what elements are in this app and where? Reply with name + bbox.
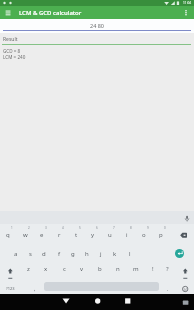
button[interactable] — [180, 265, 191, 275]
staticText: 5 — [79, 226, 81, 230]
button[interactable]: m — [126, 263, 146, 275]
button[interactable]: k — [105, 248, 125, 260]
button[interactable]: q — [0, 229, 18, 241]
button[interactable]: , — [25, 282, 45, 294]
staticText: q — [6, 231, 10, 239]
button[interactable]: b — [90, 263, 110, 275]
button[interactable] — [58, 296, 74, 308]
button[interactable]: ?123 — [0, 282, 20, 294]
button[interactable]: a — [6, 248, 26, 260]
button[interactable]: y — [83, 229, 103, 241]
staticText: 2 — [28, 226, 30, 230]
button[interactable]: n — [108, 263, 128, 275]
staticText: LCM & GCD calculator — [19, 9, 82, 17]
staticText: m — [133, 265, 139, 273]
staticText: 9 — [147, 226, 149, 230]
staticText: ?123 — [6, 286, 15, 291]
staticText: a — [14, 250, 18, 258]
button[interactable]: z — [18, 263, 38, 275]
button[interactable]: f — [49, 248, 69, 260]
staticText: j — [100, 250, 102, 258]
button[interactable]: ? — [157, 263, 177, 275]
staticText: , — [34, 285, 36, 292]
staticText: x — [44, 265, 48, 273]
staticText: h — [85, 250, 89, 258]
button[interactable]: g — [63, 248, 83, 260]
button[interactable]: w — [15, 229, 35, 241]
staticText: z — [27, 265, 30, 273]
staticText: 24 80 — [90, 22, 105, 29]
staticText: n — [116, 265, 120, 273]
button[interactable] — [175, 249, 184, 258]
staticText: t — [75, 231, 78, 239]
button[interactable]: c — [54, 263, 74, 275]
button[interactable] — [181, 284, 190, 293]
staticText: Result — [3, 36, 18, 43]
button[interactable]: j — [91, 248, 111, 260]
staticText: k — [113, 250, 117, 258]
button[interactable]: . — [158, 282, 178, 294]
button[interactable] — [178, 230, 190, 240]
staticText: g — [71, 250, 75, 258]
button[interactable] — [120, 296, 136, 308]
staticText: d — [42, 250, 46, 258]
staticText: . — [167, 285, 169, 292]
button[interactable] — [0, 19, 194, 33]
button[interactable] — [3, 8, 13, 17]
button[interactable] — [5, 265, 16, 275]
staticText: e — [40, 231, 44, 239]
button[interactable]: u — [100, 229, 120, 241]
staticText: o — [142, 231, 146, 239]
button[interactable]: p — [151, 229, 171, 241]
button[interactable]: ! — [143, 263, 163, 275]
staticText: 11:04 — [183, 1, 192, 5]
staticText: 3 — [45, 226, 47, 230]
button[interactable]: t — [66, 229, 86, 241]
staticText: 0 — [164, 226, 166, 230]
staticText: b — [98, 265, 102, 273]
staticText: v — [80, 265, 84, 273]
button[interactable]: h — [77, 248, 97, 260]
staticText: 4 — [62, 226, 64, 230]
button[interactable]: v — [72, 263, 92, 275]
button[interactable]: x — [36, 263, 56, 275]
staticText: 8 — [130, 226, 132, 230]
staticText: 6 — [96, 226, 98, 230]
staticText: w — [23, 231, 28, 239]
button[interactable]: r — [49, 229, 69, 241]
staticText: p — [159, 231, 163, 239]
staticText: y — [91, 231, 95, 239]
button[interactable]: s — [20, 248, 40, 260]
staticText: u — [108, 231, 112, 239]
button[interactable] — [90, 296, 106, 308]
staticText: ? — [166, 265, 169, 273]
button[interactable]: d — [34, 248, 54, 260]
staticText: ! — [152, 265, 154, 273]
button[interactable]: i — [117, 229, 137, 241]
staticText: r — [58, 231, 61, 239]
staticText: c — [63, 265, 66, 273]
staticText: i — [126, 231, 128, 239]
button[interactable]: e — [32, 229, 52, 241]
staticText: s — [29, 250, 32, 258]
staticText: GCD = 8 — [3, 48, 21, 54]
button[interactable]: o — [134, 229, 154, 241]
button[interactable]: l — [120, 248, 140, 260]
button[interactable] — [179, 297, 191, 307]
button[interactable] — [182, 8, 191, 17]
staticText: LCM = 240 — [3, 54, 26, 60]
staticText: f — [58, 250, 61, 258]
staticText: l — [129, 250, 131, 258]
staticText: 1 — [11, 226, 13, 230]
staticText: 7 — [113, 226, 115, 230]
